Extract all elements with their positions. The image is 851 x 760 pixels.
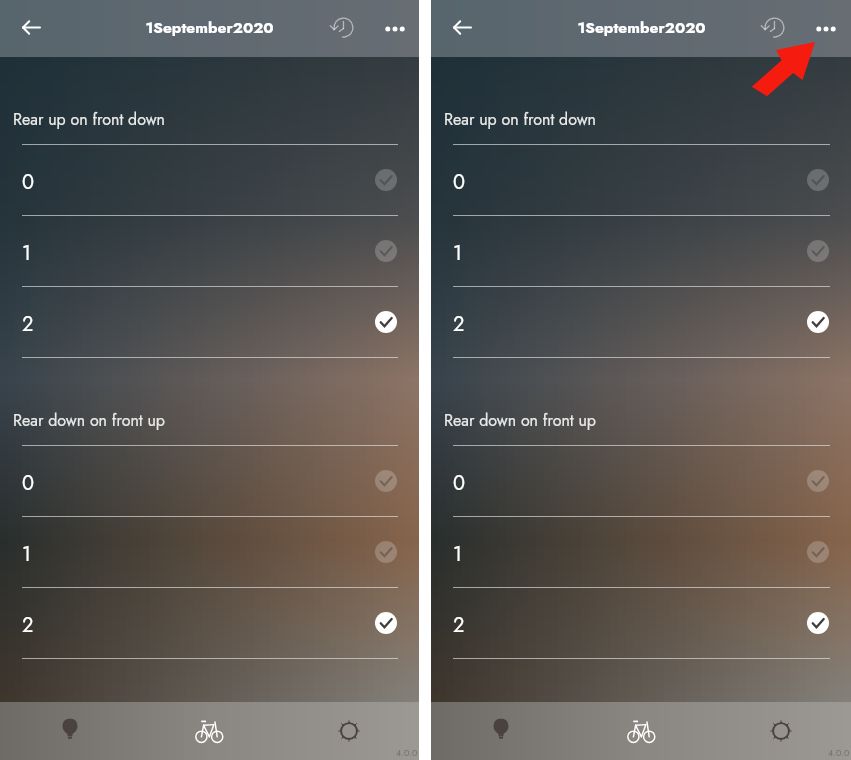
button[interactable]: 2 (0, 588, 419, 658)
staticText: 0 (22, 469, 34, 498)
staticText: 2 (453, 611, 465, 640)
button[interactable]: Tips (0, 702, 139, 760)
staticText: 1September2020 (145, 16, 274, 38)
staticText: Rear down on front up (444, 409, 596, 432)
button[interactable]: 0 (431, 446, 851, 516)
button[interactable]: History (322, 8, 364, 50)
button[interactable]: 0 (0, 446, 419, 516)
staticText: 1 (453, 540, 462, 569)
button[interactable]: Rides (571, 702, 711, 760)
button[interactable]: Back (444, 9, 480, 45)
staticText: Rear up on front down (444, 108, 596, 131)
staticText: 1September2020 (577, 16, 706, 38)
button[interactable]: More options (806, 9, 846, 49)
button[interactable]: 2 (431, 588, 851, 658)
button[interactable]: History (753, 8, 795, 50)
button[interactable]: Settings (279, 702, 419, 760)
staticText: Rear down on front up (13, 409, 165, 432)
staticText: 2 (453, 310, 465, 339)
staticText: 2 (22, 611, 34, 640)
staticText: 0 (453, 469, 465, 498)
button[interactable]: Settings (711, 702, 851, 760)
staticText: 4.0.0 (828, 746, 850, 759)
staticText: Rear up on front down (13, 108, 165, 131)
button[interactable]: Rides (139, 702, 279, 760)
button[interactable]: 1 (431, 216, 851, 286)
staticText: 0 (453, 168, 465, 197)
button[interactable]: 0 (431, 145, 851, 215)
button[interactable]: 1 (431, 517, 851, 587)
button[interactable]: 1 (0, 216, 419, 286)
staticText: 0 (22, 168, 34, 197)
button[interactable]: 2 (0, 287, 419, 357)
button[interactable]: Tips (431, 702, 571, 760)
button[interactable]: 2 (431, 287, 851, 357)
staticText: 4.0.0 (396, 746, 418, 759)
button[interactable]: More options (375, 9, 415, 49)
button[interactable]: 1 (0, 517, 419, 587)
button[interactable]: 0 (0, 145, 419, 215)
staticText: 1 (22, 540, 31, 569)
button[interactable]: Back (13, 9, 49, 45)
staticText: 1 (453, 239, 462, 268)
staticText: 2 (22, 310, 34, 339)
staticText: 1 (22, 239, 31, 268)
